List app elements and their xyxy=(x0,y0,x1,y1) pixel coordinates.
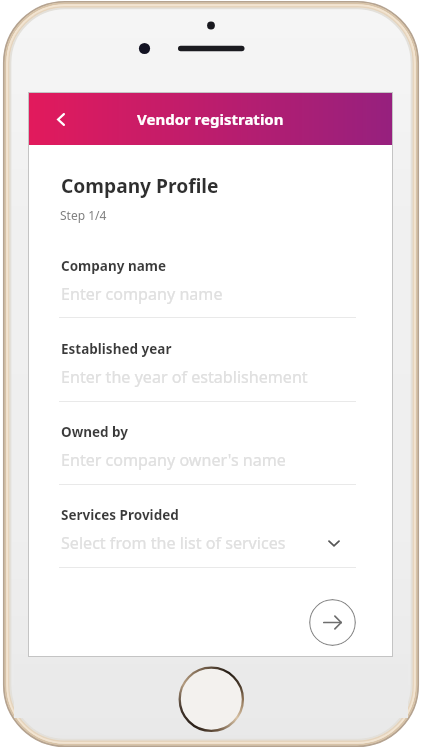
button[interactable] xyxy=(61,501,357,573)
staticText: Owned by xyxy=(61,423,129,441)
staticText: Enter the year of establishement xyxy=(61,366,308,388)
staticText: Company Profile xyxy=(61,172,219,198)
staticText: Enter company name xyxy=(61,283,223,305)
button[interactable]: Back xyxy=(46,104,76,134)
button[interactable] xyxy=(61,335,357,407)
staticText: Vendor registration xyxy=(137,109,284,129)
button[interactable] xyxy=(61,252,357,323)
button[interactable] xyxy=(61,418,357,490)
staticText: Established year xyxy=(61,340,172,358)
staticText: Company name xyxy=(61,257,166,275)
button[interactable]: Next xyxy=(309,599,356,646)
staticText: Select from the list of services xyxy=(61,532,286,554)
staticText: Services Provided xyxy=(61,506,179,524)
staticText: Enter company owner's name xyxy=(61,449,286,471)
staticText: Step 1/4 xyxy=(60,207,107,223)
